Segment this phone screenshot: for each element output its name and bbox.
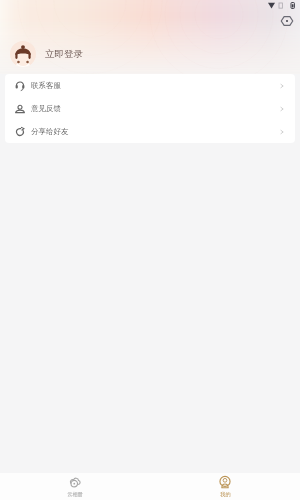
button[interactable]: 分享给好友 (5, 120, 295, 143)
button[interactable]: Settings (279, 13, 294, 28)
staticText: 我的 (220, 491, 231, 498)
staticText: 分享给好友 (31, 127, 69, 136)
staticText: 意见反馈 (31, 104, 61, 113)
button[interactable]: 云相册 (0, 473, 150, 500)
staticText: 云相册 (67, 491, 83, 498)
staticText: 联系客服 (31, 81, 61, 90)
button[interactable]: 我的 (150, 473, 300, 500)
button[interactable]: 立即登录 (10, 41, 83, 67)
staticText: 立即登录 (45, 48, 83, 60)
button[interactable]: 联系客服 (5, 74, 295, 97)
button[interactable]: 意见反馈 (5, 97, 295, 120)
